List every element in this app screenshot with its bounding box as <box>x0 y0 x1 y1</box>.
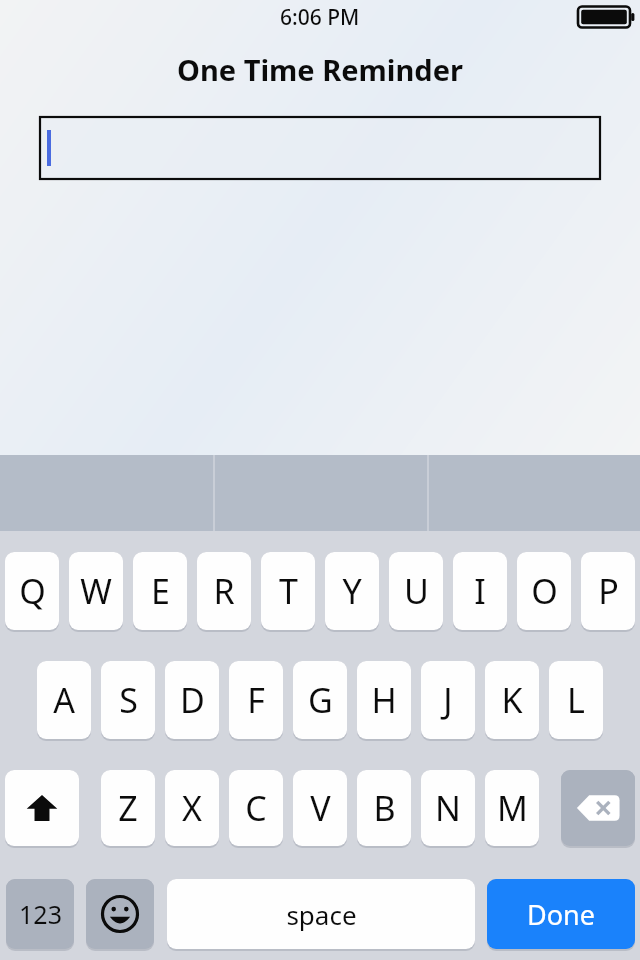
staticText: X <box>182 785 202 831</box>
staticText: 123 <box>19 897 62 931</box>
staticText: F <box>247 677 265 723</box>
button[interactable]: J <box>421 661 475 739</box>
staticText: Z <box>118 785 138 831</box>
button[interactable]: F <box>229 661 283 739</box>
button[interactable]: A <box>37 661 91 739</box>
staticText: Done <box>527 896 595 933</box>
button[interactable]: L <box>549 661 603 739</box>
staticText: M <box>497 785 528 831</box>
button[interactable]: B <box>357 770 411 846</box>
button[interactable]: S <box>101 661 155 739</box>
staticText: L <box>567 677 585 723</box>
button[interactable]: space <box>167 879 475 949</box>
button[interactable]: Q <box>5 552 59 630</box>
staticText: One Time Reminder <box>0 50 640 89</box>
button[interactable]: O <box>517 552 571 630</box>
button[interactable]: M <box>485 770 539 846</box>
staticText: U <box>404 568 429 614</box>
button[interactable]: V <box>293 770 347 846</box>
staticText: B <box>373 785 396 831</box>
staticText: E <box>151 568 170 614</box>
button[interactable]: P <box>581 552 635 630</box>
staticText: C <box>245 785 267 831</box>
button[interactable]: 123 <box>6 879 74 949</box>
button[interactable]: Emoji <box>86 879 154 949</box>
button[interactable]: G <box>293 661 347 739</box>
button[interactable]: E <box>133 552 187 630</box>
staticText: S <box>119 677 138 723</box>
staticText: J <box>443 677 453 723</box>
button[interactable]: H <box>357 661 411 739</box>
button[interactable]: K <box>485 661 539 739</box>
staticText: A <box>53 677 75 723</box>
staticText: H <box>371 677 397 723</box>
staticText: K <box>501 677 523 723</box>
button[interactable]: C <box>229 770 283 846</box>
button[interactable]: Done <box>487 879 635 949</box>
staticText: R <box>213 568 235 614</box>
button[interactable]: U <box>389 552 443 630</box>
staticText: D <box>180 677 205 723</box>
staticText: N <box>435 785 461 831</box>
button[interactable]: Z <box>101 770 155 846</box>
button[interactable]: R <box>197 552 251 630</box>
staticText: I <box>474 568 486 614</box>
button[interactable]: X <box>165 770 219 846</box>
button[interactable]: Shift <box>5 770 79 846</box>
button[interactable]: Backspace <box>561 770 635 846</box>
staticText: 6:06 PM <box>280 3 360 32</box>
staticText: Q <box>19 568 46 614</box>
button[interactable]: T <box>261 552 315 630</box>
staticText: P <box>598 568 619 614</box>
staticText: space <box>286 897 357 932</box>
staticText: T <box>279 568 298 614</box>
button[interactable]: Y <box>325 552 379 630</box>
staticText: Y <box>342 568 362 614</box>
button[interactable]: I <box>453 552 507 630</box>
staticText: V <box>310 785 331 831</box>
button[interactable]: N <box>421 770 475 846</box>
staticText: O <box>531 568 558 614</box>
staticText: W <box>80 568 112 614</box>
button[interactable]: D <box>165 661 219 739</box>
staticText: G <box>308 677 333 723</box>
button[interactable] <box>40 117 600 179</box>
button[interactable]: W <box>69 552 123 630</box>
